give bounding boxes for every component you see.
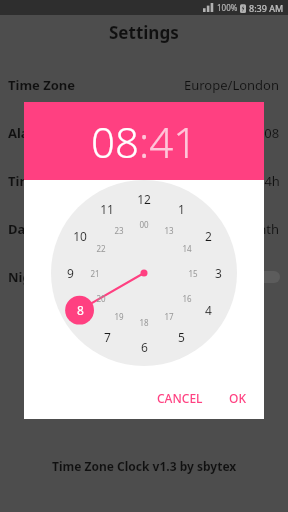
button[interactable]: Clock face hour selector <box>51 180 237 366</box>
button[interactable]: Night mode <box>0 253 288 301</box>
staticText: 8:39 AM <box>249 2 284 14</box>
staticText: CANCEL <box>157 390 203 406</box>
staticText: 00 <box>139 219 149 230</box>
staticText: OK <box>229 390 246 406</box>
button[interactable]: CANCEL <box>149 384 211 412</box>
staticText: Night mode <box>8 268 85 286</box>
staticText: 11 <box>100 201 114 217</box>
button[interactable]: Time Zone <box>0 61 288 109</box>
staticText: 14 <box>182 243 192 254</box>
button[interactable]: Date format <box>0 205 288 253</box>
staticText: Europe/London <box>184 76 280 94</box>
staticText: 12 <box>137 191 151 207</box>
staticText: Settings <box>109 21 179 44</box>
staticText: 100% <box>217 2 238 13</box>
staticText: 08:08 <box>246 124 280 142</box>
button[interactable]: Time format <box>0 157 288 205</box>
staticText: Time Zone Clock v1.3 by sbytex <box>52 458 237 474</box>
staticText: 4 <box>205 302 212 318</box>
staticText: 6 <box>141 339 148 355</box>
staticText: 9 <box>67 265 74 281</box>
staticText: :41 <box>139 113 198 170</box>
staticText: 13 <box>164 225 174 236</box>
staticText: 22 <box>96 243 106 254</box>
staticText: 3 <box>215 265 222 281</box>
staticText: 7 <box>104 329 111 345</box>
button[interactable]: Alarm <box>0 109 288 157</box>
button[interactable]: 08 <box>24 102 264 180</box>
staticText: Alarm <box>8 124 48 142</box>
staticText: 2 <box>205 228 212 244</box>
staticText: Time format <box>8 172 89 190</box>
staticText: 8 <box>77 302 84 318</box>
staticText: day month <box>213 220 280 238</box>
staticText: 08 <box>91 113 139 170</box>
button[interactable]: OK <box>221 384 254 412</box>
staticText: 16 <box>182 293 192 304</box>
staticText: 1 <box>178 201 185 217</box>
staticText: 24h <box>257 172 280 190</box>
staticText: 5 <box>178 329 185 345</box>
staticText: Time Zone <box>8 76 76 94</box>
staticText: Date format <box>8 220 88 238</box>
staticText: 23 <box>114 225 124 236</box>
staticText: 19 <box>114 311 124 322</box>
staticText: 21 <box>90 268 100 279</box>
staticText: 15 <box>188 268 198 279</box>
staticText: 20 <box>96 293 106 304</box>
staticText: 18 <box>139 317 149 328</box>
staticText: 17 <box>164 311 174 322</box>
staticText: 10 <box>73 228 87 244</box>
